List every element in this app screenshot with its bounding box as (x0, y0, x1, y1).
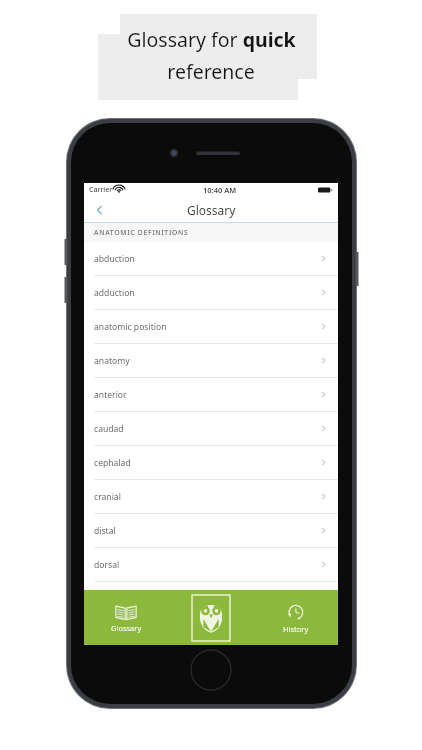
staticText: cephalad (94, 457, 131, 469)
button[interactable]: adduction (84, 276, 338, 309)
staticText: dorsal (94, 559, 120, 571)
staticText: reference (167, 58, 255, 85)
button[interactable]: dorsal (84, 548, 338, 581)
staticText: ANATOMIC DEFINITIONS (94, 228, 189, 237)
button[interactable]: Glossary (84, 590, 168, 645)
button[interactable]: Home (168, 590, 253, 645)
staticText: Glossary for quick (127, 26, 296, 53)
button[interactable]: abduction (84, 242, 338, 275)
staticText: cranial (94, 491, 121, 503)
button[interactable]: cephalad (84, 446, 338, 479)
staticText: anterior (94, 389, 127, 401)
button[interactable]: cranial (84, 480, 338, 513)
staticText: Carrier (89, 185, 113, 195)
button[interactable]: History (253, 590, 338, 645)
staticText: Glossary (187, 202, 236, 218)
button[interactable]: Back (89, 199, 111, 221)
button[interactable]: distal (84, 514, 338, 547)
button[interactable]: anterior (84, 378, 338, 411)
staticText: anatomy (94, 355, 130, 367)
button[interactable]: anatomy (84, 344, 338, 377)
staticText: 10:40 AM (203, 185, 237, 195)
staticText: Glossary (111, 623, 142, 633)
staticText: History (283, 624, 309, 634)
staticText: caudad (94, 423, 124, 435)
staticText: anatomic position (94, 321, 167, 333)
staticText: abduction (94, 253, 135, 265)
button[interactable]: caudad (84, 412, 338, 445)
staticText: distal (94, 525, 116, 537)
button[interactable]: anatomic position (84, 310, 338, 343)
staticText: adduction (94, 287, 135, 299)
